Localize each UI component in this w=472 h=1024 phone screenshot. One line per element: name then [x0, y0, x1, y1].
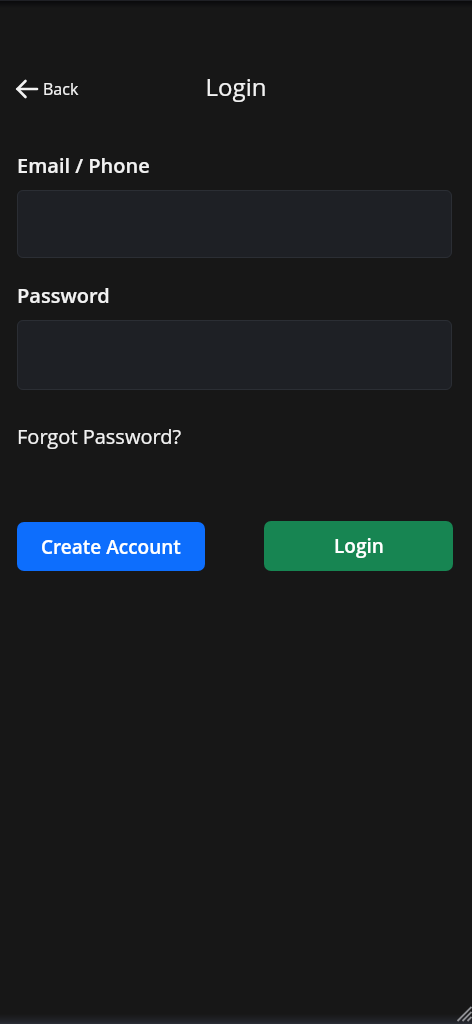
staticText: Back [43, 78, 79, 100]
button[interactable]: Create Account [17, 522, 205, 571]
staticText: Login [334, 533, 384, 559]
button[interactable]: Login [264, 521, 453, 571]
staticText: Create Account [41, 534, 181, 560]
button[interactable]: Forgot Password? [17, 423, 182, 450]
staticText: Email / Phone [17, 152, 150, 179]
button[interactable]: Back [14, 74, 81, 104]
staticText: Login [0, 70, 472, 103]
staticText: Password [17, 282, 110, 309]
